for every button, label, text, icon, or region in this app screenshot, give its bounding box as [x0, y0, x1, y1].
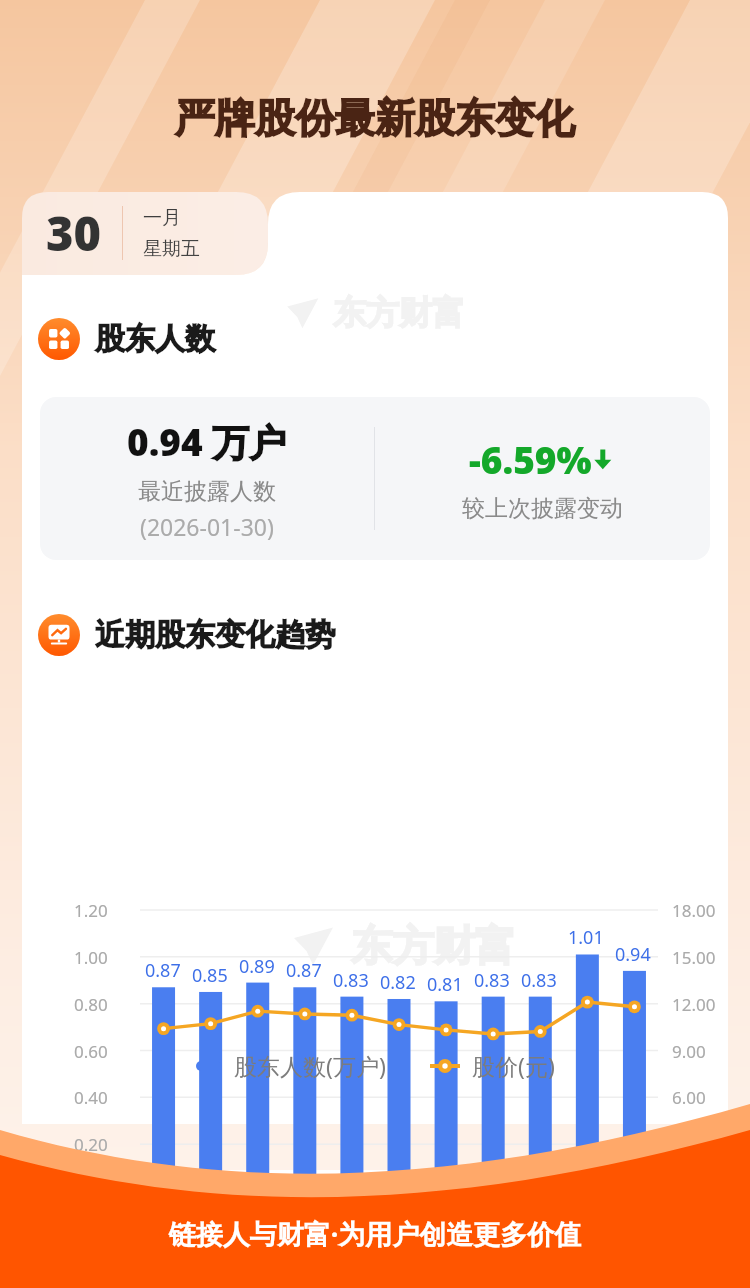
staticText: 股东人数(万户)	[234, 1050, 386, 1081]
staticText: 股东人数	[95, 320, 215, 358]
staticText: 12.00	[672, 993, 716, 1016]
button[interactable]: 近期股东变化趋势	[38, 614, 335, 656]
staticText: 0.87	[286, 958, 322, 983]
staticText: 最近披露人数	[138, 477, 276, 506]
staticText: 18.00	[672, 899, 716, 922]
staticText: 星期五	[143, 237, 200, 261]
staticText: 0.94 万户	[127, 416, 287, 467]
staticText: (2026-01-30)	[140, 511, 274, 542]
staticText: 2026/1/9	[495, 1206, 566, 1229]
other: 股东人数	[38, 318, 80, 360]
staticText: 股价(元)	[472, 1050, 555, 1081]
staticText: 严牌股份最新股东变化	[0, 93, 750, 143]
button[interactable]: 股价(元)	[430, 1050, 555, 1081]
staticText: 2025/10/20	[119, 1206, 210, 1229]
staticText: 东方财富	[333, 292, 465, 334]
button[interactable]: 股东人数(万户)	[196, 1050, 386, 1081]
staticText: 0.83	[333, 968, 369, 993]
button[interactable]: 0.94 万户	[40, 397, 710, 560]
staticText: 0.60	[74, 1040, 108, 1063]
staticText: 东方财富	[351, 920, 516, 972]
staticText: 1.20	[74, 899, 108, 922]
staticText: 链接人与财富·为用户创造更多价值	[0, 1215, 750, 1252]
staticText: 15.00	[672, 946, 716, 969]
staticText: 2025/11/28	[307, 1206, 398, 1229]
staticText: 0.81	[427, 972, 463, 997]
staticText: 2025/11/10	[213, 1206, 304, 1229]
staticText: 1.00	[74, 946, 108, 969]
staticText: 0.87	[145, 958, 181, 983]
staticText: 0.83	[474, 968, 510, 993]
other: 近期股东变化趋势	[38, 614, 80, 656]
staticText: 较上次披露变动	[462, 494, 623, 523]
staticText: 0.20	[74, 1133, 108, 1156]
staticText: 1.01	[568, 925, 604, 950]
staticText: 2025/12/19	[401, 1206, 492, 1229]
staticText: 近期股东变化趋势	[95, 616, 335, 654]
staticText: -6.59%	[469, 434, 592, 484]
staticText: 0.89	[239, 954, 275, 979]
staticText: 0.83	[521, 968, 557, 993]
staticText: 3.00	[672, 1133, 706, 1156]
staticText: 0.82	[380, 970, 416, 995]
staticText: 0.40	[74, 1086, 108, 1109]
staticText: 0.85	[192, 963, 228, 988]
staticText: 30	[46, 201, 102, 265]
button[interactable]: 股东人数	[38, 318, 215, 360]
staticText: 0.94	[615, 942, 651, 967]
staticText: 6.00	[672, 1086, 706, 1109]
staticText: 0.80	[74, 993, 108, 1016]
staticText: 一月	[143, 206, 181, 230]
staticText: 9.00	[672, 1040, 706, 1063]
